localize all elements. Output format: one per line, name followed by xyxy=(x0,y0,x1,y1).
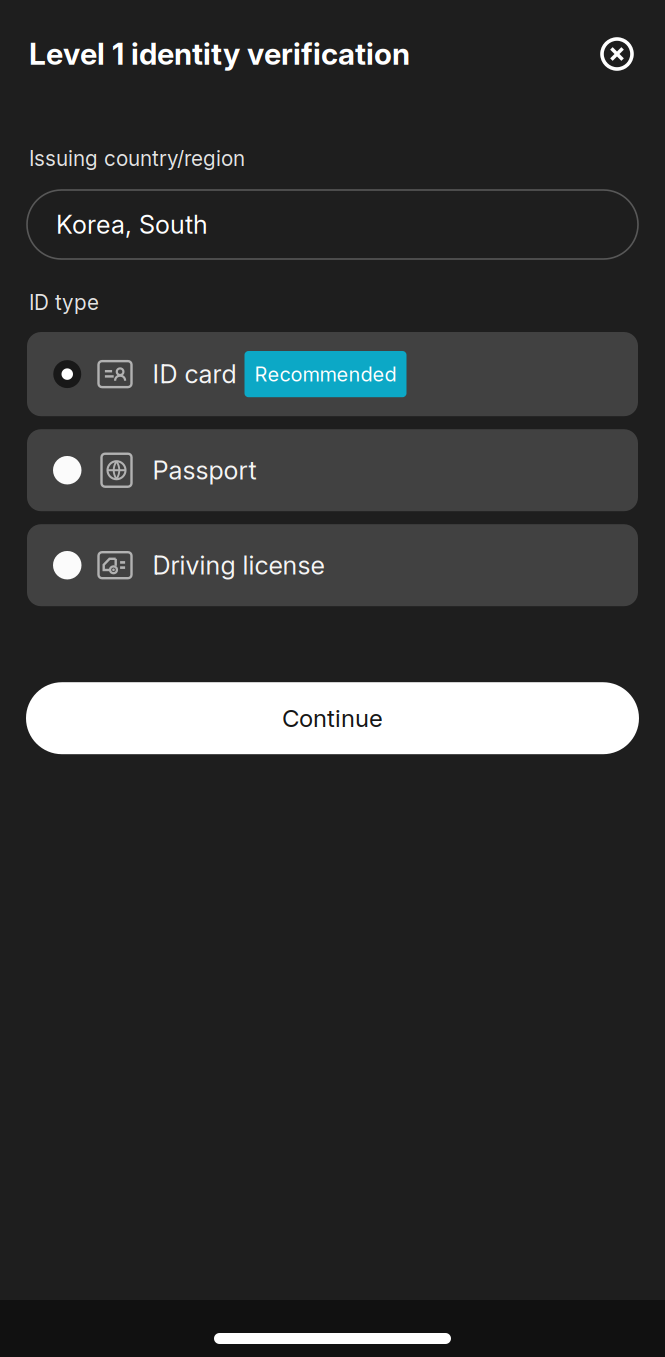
staticText: Driving license xyxy=(152,550,324,581)
button[interactable]: Korea, South xyxy=(27,190,638,259)
staticText: Level 1 identity verification xyxy=(29,36,410,72)
staticText: Issuing country/region xyxy=(29,146,245,171)
staticText: Continue xyxy=(282,704,383,733)
staticText: Passport xyxy=(152,455,256,486)
staticText: ID type xyxy=(29,290,99,315)
button[interactable]: Continue xyxy=(26,682,639,754)
staticText: Korea, South xyxy=(56,209,208,240)
staticText: ID card xyxy=(152,359,236,389)
staticText: Recommended xyxy=(254,362,396,386)
button[interactable]: ID card xyxy=(27,332,638,416)
button[interactable]: Passport xyxy=(27,429,638,511)
button[interactable]: Close xyxy=(597,34,637,74)
button[interactable]: Driving license xyxy=(27,524,638,606)
